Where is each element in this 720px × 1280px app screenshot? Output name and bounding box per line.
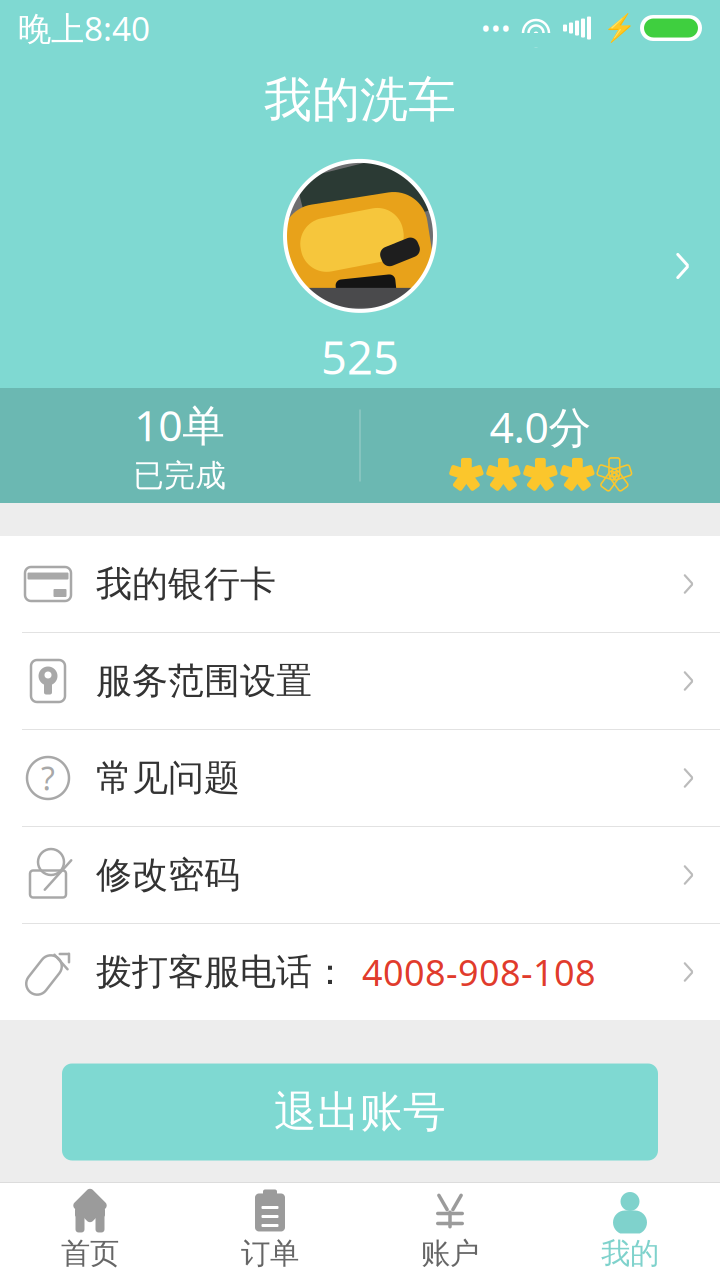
staticText: ?: [41, 757, 55, 799]
button[interactable]: 我的: [540, 1183, 720, 1280]
staticText: 4008-908-108: [362, 948, 596, 996]
staticText: 退出账号: [274, 1086, 446, 1138]
staticText: 我的: [601, 1235, 659, 1271]
staticText: 服务范围设置: [96, 659, 312, 703]
staticText: 拨打客服电话：: [96, 950, 348, 994]
staticText: 账户: [421, 1235, 479, 1271]
button[interactable]: 修改密码: [0, 827, 720, 924]
staticText: ⚡: [603, 13, 636, 43]
button[interactable]: 我的银行卡: [0, 536, 720, 633]
staticText: 晚上8:40: [18, 6, 150, 50]
staticText: 首页: [61, 1235, 119, 1271]
staticText: 修改密码: [96, 853, 240, 897]
staticText: 我的洗车: [264, 70, 456, 129]
staticText: 订单: [241, 1235, 299, 1271]
button[interactable]: 服务范围设置: [0, 633, 720, 730]
staticText: 常见问题: [96, 756, 240, 800]
staticText: 已完成: [133, 457, 226, 495]
staticText: •••: [481, 11, 511, 45]
button[interactable]: ?: [0, 730, 720, 827]
button[interactable]: 525: [0, 144, 720, 388]
staticText: 10单: [134, 396, 225, 453]
button[interactable]: 退出账号: [62, 1063, 658, 1160]
button[interactable]: 拨打客服电话：: [0, 924, 720, 1020]
button[interactable]: 订单: [180, 1183, 360, 1280]
staticText: 525: [321, 327, 399, 387]
button[interactable]: 账户: [360, 1183, 540, 1280]
staticText: 4.0分: [489, 398, 591, 455]
staticText: 我的银行卡: [96, 562, 276, 606]
button[interactable]: 首页: [0, 1183, 180, 1280]
